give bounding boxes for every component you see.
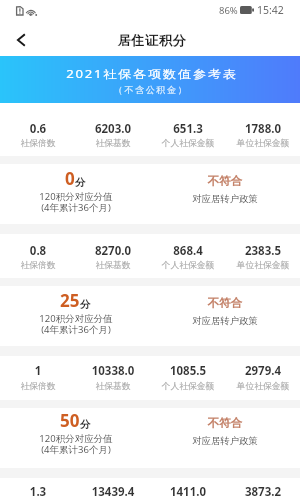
staticText: 个人社保金额 bbox=[38, 381, 300, 392]
staticText: 单位社保金额 bbox=[113, 260, 300, 271]
staticText: 0 bbox=[65, 167, 75, 190]
staticText: 120积分对应分值 bbox=[0, 190, 226, 203]
staticText: (4年累计36个月) bbox=[0, 323, 226, 336]
staticText: 13439.4 bbox=[0, 484, 263, 500]
staticText: 社保倍数 bbox=[0, 381, 188, 392]
staticText: 对应居转户政策 bbox=[75, 193, 300, 205]
staticText: 对应居转户政策 bbox=[75, 435, 300, 447]
staticText: 86% bbox=[219, 4, 238, 17]
staticText: 对应居转户政策 bbox=[75, 315, 300, 327]
staticText: 分 bbox=[80, 418, 91, 431]
staticText: (4年累计36个月) bbox=[0, 443, 226, 456]
staticText: 0.8 bbox=[0, 243, 188, 259]
staticText: 1 bbox=[0, 363, 188, 379]
staticText: 社保基数 bbox=[0, 260, 263, 271]
staticText: 社保倍数 bbox=[0, 260, 188, 271]
staticText: 25 bbox=[60, 289, 80, 312]
staticText: 不符合 bbox=[75, 416, 300, 431]
staticText: 50 bbox=[60, 409, 80, 432]
staticText: 社保基数 bbox=[0, 381, 263, 392]
staticText: 651.3 bbox=[38, 121, 300, 137]
staticText: 2383.5 bbox=[113, 243, 300, 259]
staticText: 个人社保金额 bbox=[38, 260, 300, 271]
staticText: (4年累计36个月) bbox=[0, 201, 226, 214]
staticText: 3873.2 bbox=[113, 484, 300, 500]
staticText: 0.6 bbox=[0, 121, 188, 137]
button[interactable]: Back bbox=[4, 24, 38, 56]
staticText: 分 bbox=[80, 298, 91, 311]
staticText: 社保基数 bbox=[0, 138, 263, 149]
staticText: 15:42 bbox=[257, 3, 284, 17]
staticText: 2021社保各项数值参考表 bbox=[0, 66, 300, 81]
staticText: 不符合 bbox=[75, 174, 300, 189]
staticText: 8270.0 bbox=[0, 243, 263, 259]
staticText: 分 bbox=[75, 176, 86, 189]
staticText: 居住证积分 bbox=[2, 32, 300, 48]
staticText: 1411.0 bbox=[38, 484, 300, 500]
staticText: 10338.0 bbox=[0, 363, 263, 379]
staticText: 1788.0 bbox=[113, 121, 300, 137]
staticText: 不符合 bbox=[75, 296, 300, 311]
staticText: 单位社保金额 bbox=[113, 138, 300, 149]
staticText: 6203.0 bbox=[0, 121, 263, 137]
staticText: （不含公积金） bbox=[1, 84, 300, 95]
staticText: 单位社保金额 bbox=[113, 381, 300, 392]
staticText: 1085.5 bbox=[38, 363, 300, 379]
staticText: 2979.4 bbox=[113, 363, 300, 379]
staticText: 868.4 bbox=[38, 243, 300, 259]
staticText: 120积分对应分值 bbox=[0, 432, 226, 445]
staticText: 120积分对应分值 bbox=[0, 312, 226, 325]
staticText: 社保倍数 bbox=[0, 138, 188, 149]
staticText: 个人社保金额 bbox=[38, 138, 300, 149]
staticText: 1.3 bbox=[0, 484, 188, 500]
